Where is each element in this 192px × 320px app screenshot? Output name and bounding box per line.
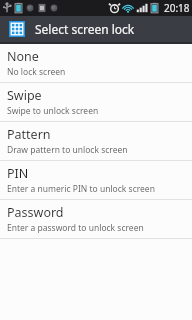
button[interactable]: PIN [0,161,192,199]
staticText: 20:18 [164,1,190,15]
staticText: Swipe [7,87,42,104]
staticText: Pattern [7,126,51,143]
button[interactable]: Screen lock [0,16,192,42]
button[interactable]: Swipe [0,83,192,121]
staticText: Select screen lock [35,21,135,37]
button[interactable]: None [0,44,192,82]
button[interactable]: Pattern [0,122,192,160]
button[interactable]: Password [0,200,192,238]
staticText: Password [7,204,64,221]
staticText: Swipe to unlock screen [7,105,99,117]
staticText: PIN [7,165,29,182]
staticText: Enter a password to unlock screen [7,222,144,234]
staticText: None [7,48,39,65]
other: Screen lock [9,21,25,37]
staticText: No lock screen [7,66,66,78]
staticText: Enter a numeric PIN to unlock screen [7,183,155,195]
staticText: Draw pattern to unlock screen [7,144,128,156]
